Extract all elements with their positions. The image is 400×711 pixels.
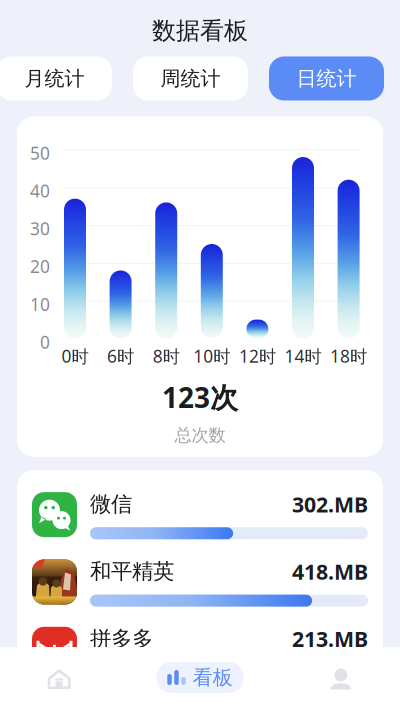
staticText: 302.MB: [292, 490, 368, 518]
staticText: 数据看板: [152, 16, 248, 45]
staticText: 月统计: [24, 66, 84, 91]
staticText: 40: [30, 179, 50, 202]
button[interactable]: 拼多多: [17, 616, 383, 683]
staticText: 10: [30, 293, 50, 316]
staticText: 10时: [193, 344, 230, 367]
staticText: 18时: [330, 344, 367, 367]
staticText: 微信: [90, 491, 132, 517]
staticText: 20: [30, 255, 50, 278]
button[interactable]: 微信: [17, 481, 383, 548]
button[interactable]: 月统计: [0, 56, 112, 100]
staticText: 0: [40, 330, 50, 353]
staticText: 周统计: [160, 66, 220, 91]
button[interactable]: 我的: [267, 647, 400, 711]
staticText: 总次数: [174, 425, 225, 446]
staticText: 日统计: [296, 66, 356, 91]
staticText: 213.MB: [292, 625, 368, 653]
staticText: 和平精英: [90, 558, 174, 585]
staticText: 12时: [239, 344, 276, 367]
staticText: 418.MB: [292, 557, 368, 586]
staticText: 0时: [61, 344, 88, 367]
staticText: 看板: [193, 665, 233, 690]
staticText: 14时: [284, 344, 321, 367]
staticText: 123次: [162, 378, 238, 416]
button[interactable]: 日统计: [269, 56, 384, 100]
staticText: 30: [30, 217, 50, 240]
staticText: 8时: [153, 344, 180, 367]
button[interactable]: 看板: [133, 662, 267, 696]
button[interactable]: 周统计: [133, 56, 248, 100]
staticText: 拼多多: [90, 626, 153, 652]
button[interactable]: 首页: [0, 647, 133, 711]
button[interactable]: 和平精英: [17, 548, 383, 616]
staticText: 50: [30, 141, 50, 164]
staticText: 6时: [107, 344, 134, 367]
